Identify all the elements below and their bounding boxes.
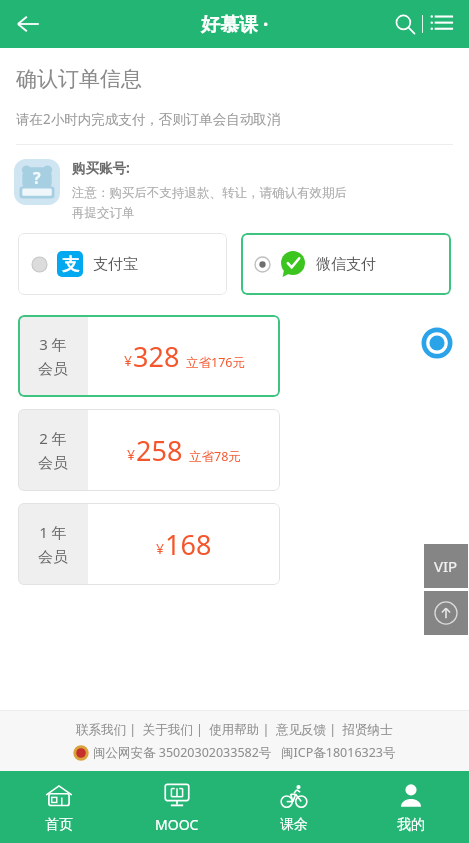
staticText: 立省78元 [189, 448, 241, 465]
staticText: 立省176元 [186, 354, 245, 371]
staticText: 2 年 会员 [38, 428, 68, 472]
staticText: ¥ [127, 445, 136, 464]
button[interactable]: 3 年 会员 [18, 315, 280, 397]
staticText: 联系我们 | 关于我们 | 使用帮助 | 意见反馈 | 招贤纳士 [76, 721, 393, 738]
staticText: 购买账号: [72, 159, 130, 177]
button[interactable]: 课余 [235, 771, 352, 843]
staticText: ? [33, 167, 41, 189]
button[interactable]: 微信支付 [241, 233, 451, 295]
staticText: 确认订单信息 [16, 66, 142, 92]
staticText: 支付宝 [93, 255, 138, 274]
staticText: 微信支付 [316, 255, 376, 274]
staticText: 首页 [45, 816, 73, 834]
button[interactable]: 首页 [0, 771, 118, 843]
staticText: VIP [434, 556, 458, 576]
staticText: 课余 [280, 816, 308, 834]
staticText: 请在2小时内完成支付，否则订单会自动取消 [16, 110, 281, 128]
button[interactable]: 我的 [352, 771, 469, 843]
staticText: 我的 [397, 816, 425, 834]
button[interactable]: Select plan [419, 325, 455, 361]
button[interactable]: Search [388, 7, 422, 41]
staticText: 1 年 会员 [38, 522, 68, 566]
button[interactable]: Menu [423, 6, 459, 42]
staticText: 好慕课 · [201, 11, 269, 37]
staticText: MOOC [155, 815, 199, 834]
button[interactable]: VIP [424, 544, 468, 588]
staticText: 支 [62, 254, 79, 275]
button[interactable]: 1 年 会员 [18, 503, 280, 585]
button[interactable]: 2 年 会员 [18, 409, 280, 491]
staticText: ¥ [156, 539, 165, 558]
staticText: 168 [165, 526, 212, 563]
button[interactable]: MOOC [118, 771, 235, 843]
button[interactable]: Back [6, 2, 50, 46]
staticText: ¥ [124, 351, 133, 370]
button[interactable]: 支 [18, 233, 227, 295]
button[interactable]: Scroll to top [424, 591, 468, 635]
staticText: 328 [133, 338, 180, 375]
staticText: 258 [136, 432, 183, 469]
staticText: 3 年 会员 [38, 334, 68, 378]
staticText: 闽公网安备 35020302033582号 闽ICP备18016323号 [93, 744, 396, 761]
staticText: 注意：购买后不支持退款、转让，请确认有效期后 再提交订单 [72, 185, 347, 221]
